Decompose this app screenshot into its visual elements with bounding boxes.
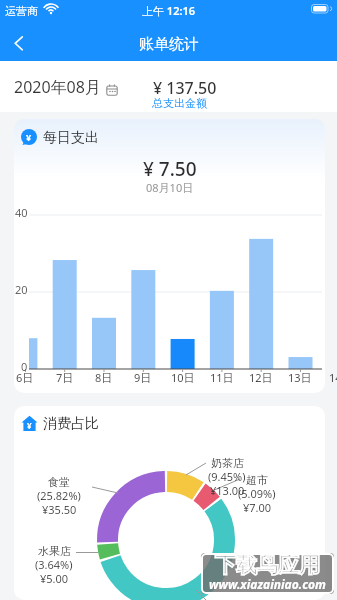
staticText: (5.09%) — [238, 486, 276, 501]
staticText: 超市 — [246, 473, 268, 487]
staticText: ¥ — [26, 131, 32, 143]
staticText: 运营商 — [5, 4, 38, 18]
staticText: 10日 — [171, 370, 195, 385]
staticText: 食堂 — [48, 475, 70, 489]
staticText: ¥7.00 — [243, 500, 272, 515]
staticText: 每日支出 — [43, 129, 99, 147]
staticText: 08月10日 — [146, 180, 194, 195]
staticText: 11日 — [210, 370, 234, 385]
staticText: www.xiazainiao.com — [209, 576, 326, 592]
staticText: ¥ 7.50 — [143, 156, 197, 182]
staticText: 6日 — [16, 370, 34, 385]
staticText: ¥ 137.50 — [153, 77, 217, 99]
staticText: 2020年08月 — [14, 76, 101, 98]
staticText: (9.45%) — [208, 469, 246, 484]
staticText: 14日 — [329, 370, 337, 385]
staticText: 下载鸟应用 — [215, 553, 320, 578]
button[interactable]: 2020年08月 — [8, 70, 128, 104]
button[interactable] — [0, 25, 44, 61]
staticText: ¥ — [27, 420, 32, 431]
staticText: (3.64%) — [35, 557, 73, 572]
staticText: 7日 — [56, 370, 74, 385]
staticText: 奶茶店 — [211, 456, 244, 470]
staticText: 40 — [15, 205, 28, 220]
staticText: 9日 — [134, 370, 152, 385]
staticText: 账单统计 — [139, 35, 199, 54]
staticText: ¥13.00 — [210, 483, 245, 498]
staticText: 水果店 — [38, 544, 71, 558]
staticText: 20 — [15, 282, 28, 297]
staticText: 消费占比 — [43, 415, 99, 433]
staticText: 0 — [21, 359, 28, 374]
staticText: 13日 — [288, 370, 312, 385]
staticText: 8日 — [95, 370, 113, 385]
staticText: ¥35.50 — [42, 502, 77, 517]
staticText: ¥5.00 — [40, 571, 69, 586]
staticText: 12日 — [249, 370, 273, 385]
staticText: 总支出金额 — [152, 96, 207, 110]
staticText: 上午 12:16 — [142, 3, 196, 18]
staticText: (25.82%) — [37, 488, 81, 503]
